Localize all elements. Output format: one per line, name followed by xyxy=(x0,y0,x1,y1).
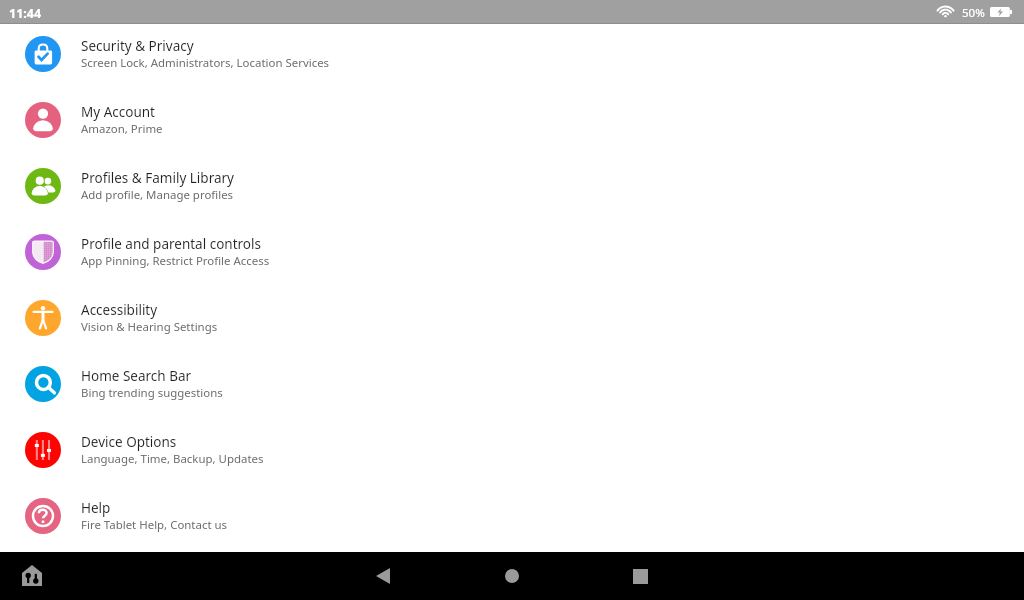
staticText: 11:44 xyxy=(9,5,42,22)
staticText: Help xyxy=(81,499,111,517)
button[interactable]: Home Search Bar xyxy=(0,351,1024,417)
staticText: Amazon, Prime xyxy=(81,121,163,137)
button[interactable]: Back xyxy=(363,556,403,596)
staticText: Accessibility xyxy=(81,301,158,319)
button[interactable]: Profiles & Family Library xyxy=(0,153,1024,219)
button[interactable]: Profile and parental controls xyxy=(0,219,1024,285)
staticText: My Account xyxy=(81,103,155,121)
staticText: Screen Lock, Administrators, Location Se… xyxy=(81,55,330,71)
staticText: App Pinning, Restrict Profile Access xyxy=(81,253,270,269)
button[interactable]: Device Options xyxy=(0,417,1024,483)
staticText: Fire Tablet Help, Contact us xyxy=(81,517,228,533)
staticText: Security & Privacy xyxy=(81,37,194,55)
button[interactable]: Security & Privacy xyxy=(0,21,1024,87)
staticText: Device Options xyxy=(81,433,177,451)
button[interactable]: My Account xyxy=(0,87,1024,153)
button[interactable]: Help xyxy=(0,483,1024,549)
staticText: Profile and parental controls xyxy=(81,235,261,253)
staticText: Profiles & Family Library xyxy=(81,169,234,187)
staticText: 50% xyxy=(962,5,985,21)
staticText: Add profile, Manage profiles xyxy=(81,187,234,203)
staticText: Bing trending suggestions xyxy=(81,385,223,401)
button[interactable]: Home xyxy=(492,556,532,596)
button[interactable]: Recent apps xyxy=(620,556,660,596)
staticText: Vision & Hearing Settings xyxy=(81,319,218,335)
button[interactable]: Home settings xyxy=(12,556,52,596)
staticText: Language, Time, Backup, Updates xyxy=(81,451,264,467)
button[interactable]: Accessibility xyxy=(0,285,1024,351)
staticText: Home Search Bar xyxy=(81,367,192,385)
